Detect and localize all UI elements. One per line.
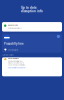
staticText: Up to date disruption info [21, 6, 43, 13]
staticText: on the whole network [8, 27, 22, 29]
button[interactable]: Service alerts [4, 48, 60, 51]
staticText: Good service [8, 24, 18, 26]
button[interactable]: More options [57, 35, 60, 38]
button[interactable]: Good service [2, 22, 62, 32]
staticText: Latest disruptions [2, 54, 14, 56]
staticText: Piccadilly line [4, 42, 24, 45]
staticText: Severe delays [8, 58, 19, 59]
staticText: Due to a signal failure at King's Cross … [8, 60, 25, 66]
staticText: Service alerts [8, 49, 18, 51]
staticText: Check before you travel [8, 67, 25, 69]
